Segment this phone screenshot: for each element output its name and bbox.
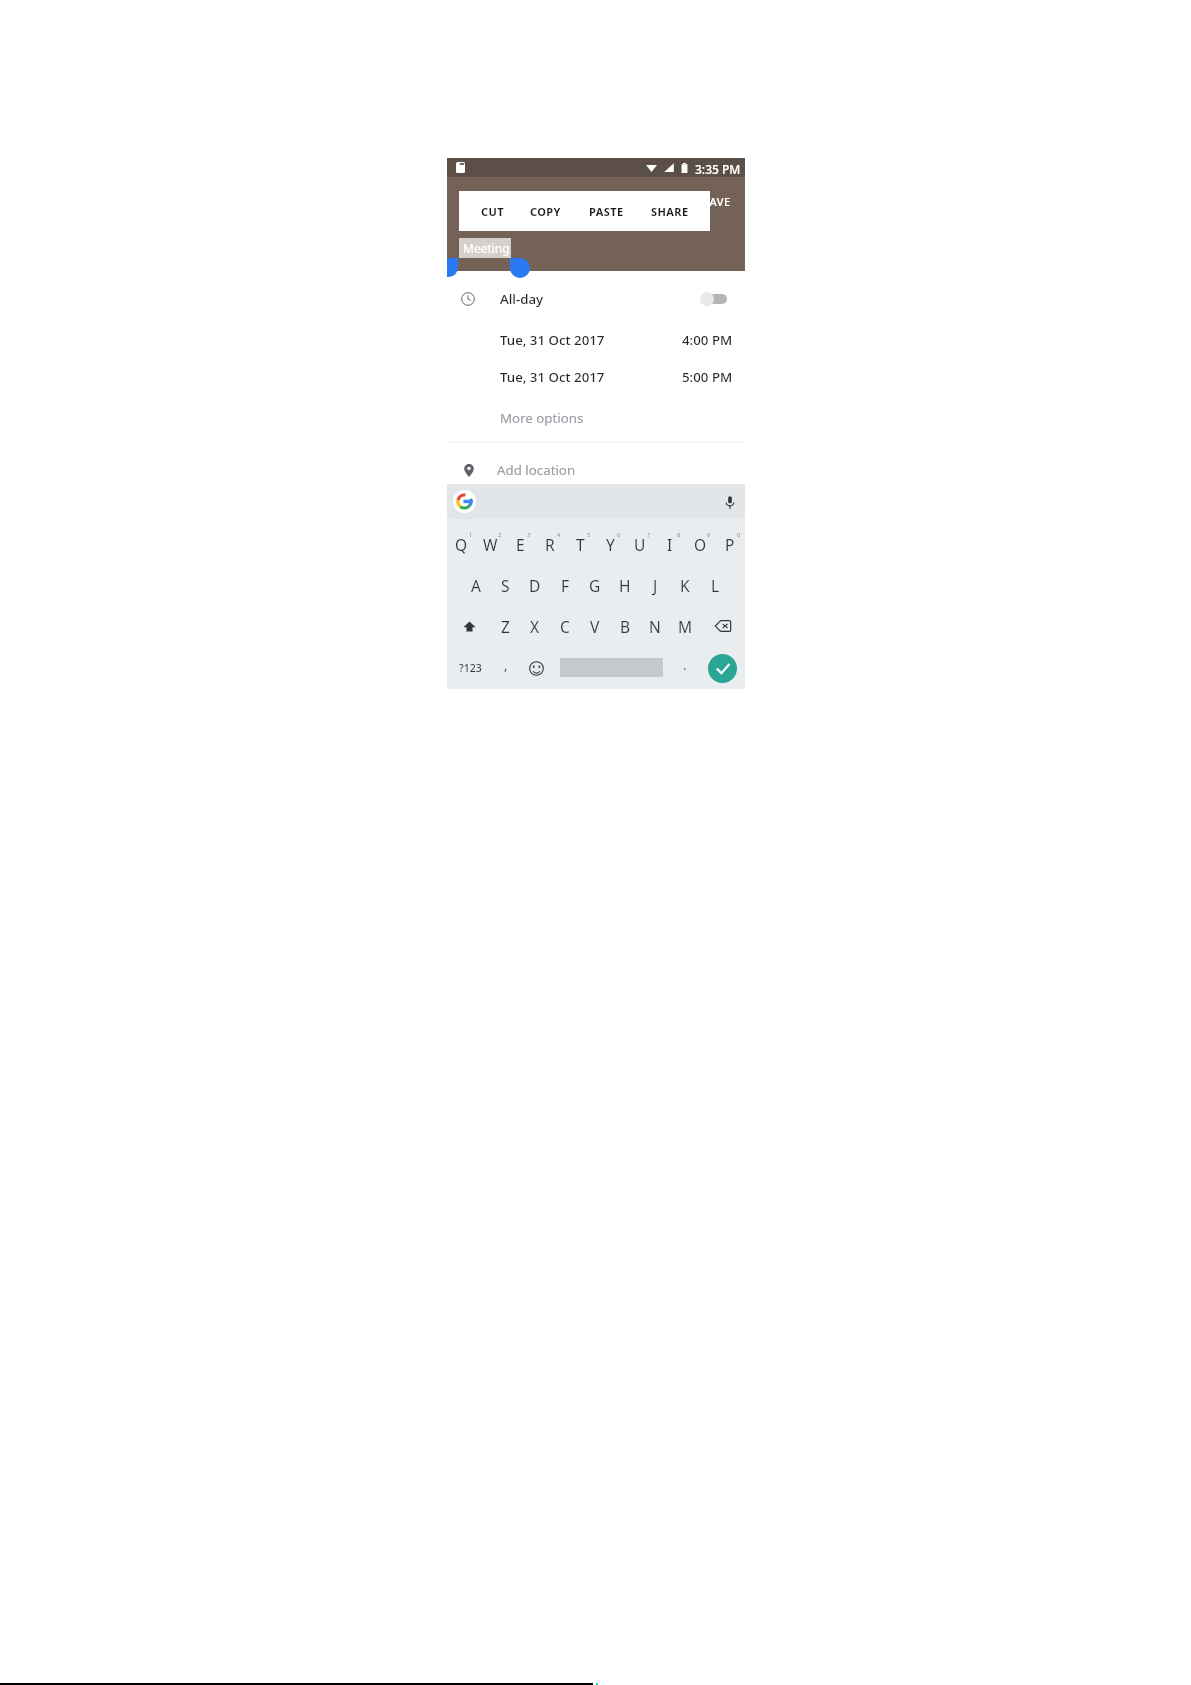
button[interactable]: I bbox=[655, 523, 685, 565]
staticText: . bbox=[683, 656, 687, 674]
button[interactable]: H bbox=[610, 564, 640, 606]
button[interactable]: Google Assistant bbox=[453, 490, 476, 513]
staticText: H bbox=[619, 575, 631, 596]
staticText: 1 bbox=[469, 531, 473, 538]
staticText: N bbox=[649, 616, 661, 637]
staticText: O bbox=[694, 534, 707, 555]
button[interactable]: F bbox=[550, 564, 580, 606]
button[interactable]: Y bbox=[595, 523, 625, 565]
staticText: D bbox=[529, 575, 541, 596]
staticText: 4:00 PM bbox=[682, 331, 733, 349]
staticText: All-day bbox=[500, 290, 544, 308]
staticText: S bbox=[501, 575, 510, 596]
staticText: Tue, 31 Oct 2017 bbox=[500, 368, 605, 386]
button[interactable]: G bbox=[580, 564, 610, 606]
staticText: U bbox=[634, 534, 646, 555]
button[interactable]: SHARE bbox=[642, 191, 698, 231]
button[interactable]: T bbox=[565, 523, 595, 565]
staticText: SHARE bbox=[651, 204, 689, 219]
staticText: 4 bbox=[557, 531, 561, 538]
staticText: W bbox=[483, 534, 498, 555]
staticText: Y bbox=[606, 534, 615, 555]
staticText: ?123 bbox=[459, 661, 482, 675]
button[interactable]: Meeting bbox=[459, 238, 511, 258]
staticText: P bbox=[725, 534, 735, 555]
button[interactable]: S bbox=[490, 564, 520, 606]
button[interactable]: COPY bbox=[517, 191, 573, 231]
staticText: 3 bbox=[527, 531, 531, 538]
button[interactable]: Space bbox=[551, 647, 671, 689]
button[interactable]: Voice input bbox=[718, 490, 742, 514]
button[interactable]: U bbox=[625, 523, 655, 565]
button[interactable]: O bbox=[685, 523, 715, 565]
staticText: COPY bbox=[530, 204, 561, 219]
staticText: 8 bbox=[677, 531, 681, 538]
staticText: More options bbox=[500, 409, 584, 427]
staticText: X bbox=[530, 616, 540, 637]
button[interactable]: Z bbox=[491, 605, 520, 647]
staticText: 2 bbox=[498, 531, 502, 538]
button[interactable]: Tue, 31 Oct 2017 bbox=[447, 329, 745, 351]
staticText: 0 bbox=[737, 531, 741, 538]
staticText: F bbox=[561, 575, 570, 596]
button[interactable]: CUT bbox=[464, 191, 520, 231]
button[interactable]: Shift bbox=[447, 605, 491, 647]
staticText: CUT bbox=[481, 204, 504, 219]
staticText: I bbox=[667, 534, 673, 555]
button[interactable]: More options bbox=[500, 409, 584, 427]
staticText: B bbox=[620, 616, 631, 637]
staticText: C bbox=[560, 616, 570, 637]
button[interactable]: Q bbox=[447, 523, 476, 565]
staticText: Z bbox=[501, 616, 510, 637]
staticText: Meeting bbox=[463, 240, 510, 256]
button[interactable]: Emoji bbox=[521, 647, 551, 689]
button[interactable]: A bbox=[461, 564, 490, 606]
staticText: SAVE bbox=[703, 194, 731, 209]
staticText: V bbox=[590, 616, 600, 637]
staticText: 9 bbox=[707, 531, 711, 538]
staticText: R bbox=[545, 534, 555, 555]
button[interactable]: Backspace bbox=[700, 605, 745, 647]
button[interactable]: ?123 bbox=[449, 647, 491, 689]
staticText: Tue, 31 Oct 2017 bbox=[500, 331, 605, 349]
staticText: Q bbox=[455, 534, 468, 555]
staticText: A bbox=[471, 575, 481, 596]
button[interactable]: Tue, 31 Oct 2017 bbox=[447, 366, 745, 388]
staticText: 5:00 PM bbox=[682, 368, 733, 386]
staticText: 6 bbox=[617, 531, 621, 538]
staticText: K bbox=[680, 575, 690, 596]
button[interactable]: P bbox=[715, 523, 745, 565]
staticText: 3:35 PM bbox=[695, 161, 741, 175]
button[interactable]: , bbox=[491, 647, 521, 689]
button[interactable]: Add location bbox=[447, 451, 745, 489]
button[interactable]: X bbox=[520, 605, 550, 647]
staticText: T bbox=[576, 534, 585, 555]
button[interactable]: K bbox=[670, 564, 700, 606]
staticText: G bbox=[589, 575, 601, 596]
button[interactable]: All-day bbox=[447, 280, 745, 318]
staticText: 7 bbox=[647, 531, 651, 538]
button[interactable]: C bbox=[550, 605, 580, 647]
button[interactable]: L bbox=[700, 564, 730, 606]
button[interactable]: N bbox=[640, 605, 670, 647]
staticText: M bbox=[678, 616, 693, 637]
button[interactable]: D bbox=[520, 564, 550, 606]
button[interactable]: E bbox=[505, 523, 535, 565]
button[interactable]: B bbox=[610, 605, 640, 647]
button[interactable]: M bbox=[670, 605, 700, 647]
staticText: E bbox=[516, 534, 525, 555]
button[interactable]: R bbox=[535, 523, 565, 565]
button[interactable]: W bbox=[476, 523, 505, 565]
staticText: , bbox=[504, 656, 508, 674]
button[interactable]: Done bbox=[699, 647, 745, 689]
button[interactable]: J bbox=[640, 564, 670, 606]
button[interactable]: . bbox=[671, 647, 699, 689]
button[interactable]: SAVE bbox=[697, 191, 745, 212]
staticText: Add location bbox=[497, 461, 576, 479]
staticText: PASTE bbox=[589, 204, 624, 219]
button[interactable]: PASTE bbox=[578, 191, 634, 231]
staticText: J bbox=[653, 575, 658, 596]
button[interactable]: V bbox=[580, 605, 610, 647]
staticText: 5 bbox=[587, 531, 591, 538]
staticText: L bbox=[711, 575, 720, 596]
